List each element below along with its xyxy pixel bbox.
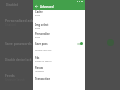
staticText: Personalized ads bbox=[5, 18, 34, 23]
staticText: Disable device lock bbox=[5, 58, 32, 62]
staticText: Updated bbox=[35, 70, 44, 73]
staticText: Enab bbox=[35, 27, 41, 30]
button[interactable]: Save pass bbox=[33, 41, 85, 46]
staticText: Enab bbox=[35, 36, 41, 39]
button[interactable]: Back bbox=[34, 4, 39, 9]
button[interactable]: Personalise bbox=[33, 31, 85, 39]
staticText: Img select bbox=[35, 23, 49, 27]
staticText: Feeds bbox=[5, 73, 15, 78]
staticText: Shows in Search bbox=[35, 60, 52, 63]
button[interactable]: Cache bbox=[33, 9, 85, 17]
staticText: Save pass bbox=[35, 42, 48, 46]
button[interactable]: Passw bbox=[33, 65, 85, 73]
staticText: Passw bbox=[35, 66, 43, 70]
staticText: Transaction bbox=[35, 77, 51, 81]
button[interactable]: Toggle save passwords bbox=[77, 42, 82, 45]
staticText: Personalise bbox=[35, 32, 50, 36]
button[interactable]: Transaction bbox=[33, 76, 85, 81]
staticText: Cache bbox=[35, 10, 43, 14]
button[interactable]: Disable dev lock bbox=[33, 48, 85, 53]
staticText: Advanced bbox=[40, 5, 54, 9]
staticText: Disabled bbox=[6, 3, 19, 7]
staticText: Disable dev lock bbox=[35, 49, 52, 52]
staticText: Fds bbox=[35, 56, 40, 60]
button[interactable]: Fds bbox=[33, 55, 85, 63]
button[interactable]: Img select bbox=[33, 22, 85, 30]
staticText: Enab bbox=[35, 14, 41, 17]
staticText: Save passwords bbox=[5, 41, 32, 46]
